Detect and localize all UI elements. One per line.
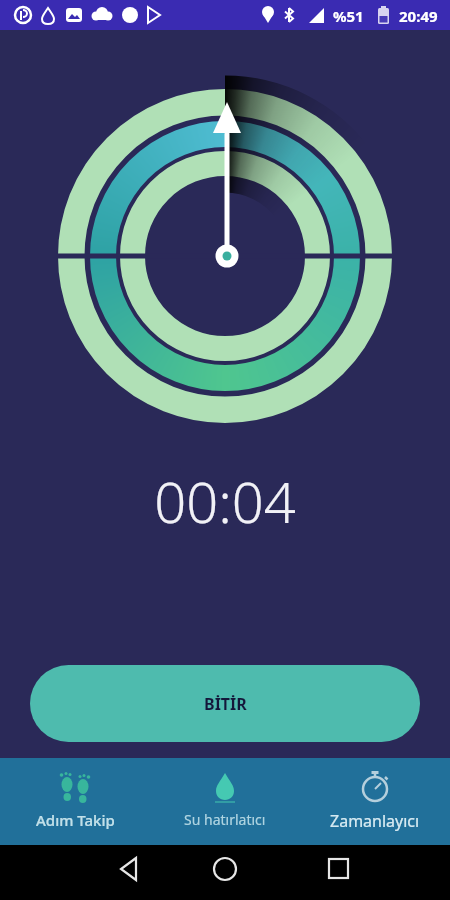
- button[interactable]: [150, 845, 300, 900]
- staticText: BİTİR: [204, 693, 247, 715]
- staticText: Adım Takip: [36, 810, 115, 830]
- button[interactable]: Adım Takip: [0, 758, 150, 845]
- button[interactable]: Su hatırlatıcı: [150, 758, 300, 845]
- button[interactable]: Zamanlayıcı: [300, 758, 450, 845]
- staticText: Su hatırlatıcı: [184, 810, 266, 829]
- button[interactable]: [300, 845, 450, 900]
- staticText: %51: [333, 6, 364, 26]
- staticText: Zamanlayıcı: [330, 810, 420, 832]
- staticText: 00:04: [154, 463, 296, 539]
- button[interactable]: [0, 845, 150, 900]
- button[interactable]: BİTİR: [30, 665, 420, 742]
- staticText: 20:49: [399, 6, 438, 26]
